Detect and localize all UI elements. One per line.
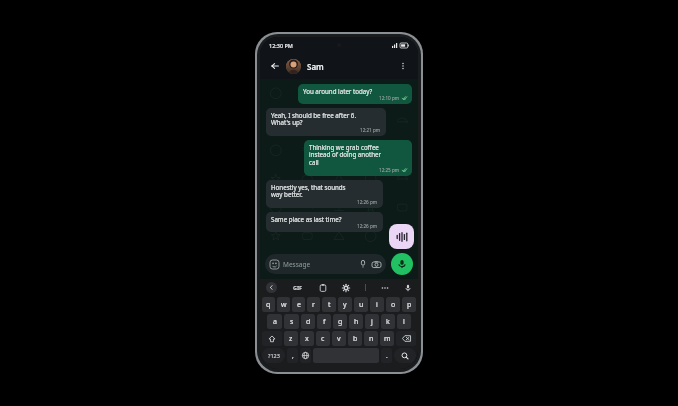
button[interactable]: Voice input [404, 284, 412, 292]
button[interactable]: More options [396, 59, 410, 73]
staticText: 12:26 pm [357, 199, 378, 205]
button[interactable]: h [349, 314, 363, 329]
button[interactable]: x [300, 331, 314, 346]
staticText: y [343, 300, 347, 310]
staticText: k [386, 317, 390, 327]
button[interactable]: Backspace [396, 331, 416, 346]
button[interactable] [286, 59, 301, 74]
button[interactable]: c [316, 331, 330, 346]
button[interactable]: a [267, 314, 282, 329]
button[interactable]: You around later today? [298, 84, 412, 104]
button[interactable]: i [370, 297, 384, 312]
staticText: n [369, 334, 374, 344]
button[interactable]: d [301, 314, 315, 329]
staticText: a [273, 317, 277, 327]
button[interactable]: Message [265, 254, 386, 274]
staticText: p [407, 300, 412, 310]
button[interactable]: Expand toolbar [266, 282, 277, 293]
button[interactable]: Settings [342, 284, 350, 292]
button[interactable]: , [287, 348, 298, 363]
button[interactable]: Yeah, I should be free after 6. What's u… [266, 108, 386, 136]
staticText: f [323, 317, 326, 327]
other: Attach [359, 260, 367, 268]
button[interactable]: e [292, 297, 305, 312]
staticText: 12:25 pm [379, 167, 400, 173]
staticText: d [306, 317, 311, 327]
button[interactable]: t [322, 297, 336, 312]
button[interactable]: Change language [300, 348, 311, 363]
button[interactable]: Clipboard [319, 284, 327, 292]
button[interactable]: s [284, 314, 299, 329]
button[interactable]: n [364, 331, 378, 346]
button[interactable]: u [354, 297, 368, 312]
staticText: 12:21 pm [360, 127, 381, 133]
button[interactable]: Shift [262, 331, 282, 346]
button[interactable]: r [307, 297, 320, 312]
button[interactable]: Honestly yes, that sounds way better. [266, 180, 383, 208]
button[interactable]: More [381, 284, 389, 292]
staticText: , [292, 351, 294, 360]
staticText: r [312, 300, 315, 310]
staticText: q [266, 300, 271, 310]
staticText: u [359, 300, 364, 310]
staticText: w [281, 300, 287, 310]
button[interactable]: ?123 [262, 348, 285, 363]
button[interactable]: GIF [293, 284, 303, 291]
button[interactable]: q [262, 297, 275, 312]
staticText: 12:26 pm [357, 223, 378, 229]
button[interactable]: Search [394, 348, 416, 363]
staticText: Thinking we grab coffee instead of doing… [309, 143, 381, 167]
button[interactable]: k [381, 314, 395, 329]
staticText: 12:10 pm [379, 95, 400, 101]
staticText: You around later today? [303, 87, 373, 95]
button[interactable]: l [397, 314, 411, 329]
staticText: Message [283, 260, 311, 269]
staticText: Honestly yes, that sounds way better. [271, 183, 346, 199]
staticText: v [337, 334, 341, 344]
staticText: m [384, 334, 391, 344]
button[interactable]: z [284, 331, 298, 346]
staticText: Sam [307, 61, 324, 72]
staticText: b [353, 334, 358, 344]
staticText: j [371, 317, 373, 327]
staticText: i [376, 300, 378, 310]
staticText: z [289, 334, 293, 344]
button[interactable]: j [365, 314, 379, 329]
staticText: 12:30 PM [269, 42, 293, 49]
button[interactable]: w [277, 297, 290, 312]
button[interactable]: Back [268, 59, 282, 73]
staticText: h [354, 317, 359, 327]
button[interactable]: v [332, 331, 346, 346]
staticText: c [321, 334, 325, 344]
button[interactable]: o [386, 297, 400, 312]
staticText: s [290, 317, 294, 327]
button[interactable]: Same place as last time? [266, 212, 383, 232]
staticText: t [328, 300, 331, 310]
button[interactable]: m [380, 331, 394, 346]
button[interactable]: . [381, 348, 392, 363]
button[interactable]: y [338, 297, 352, 312]
staticText: ?123 [268, 352, 280, 359]
staticText: g [338, 317, 343, 327]
button[interactable]: p [402, 297, 416, 312]
staticText: e [297, 300, 301, 310]
button[interactable]: Thinking we grab coffee instead of doing… [304, 140, 412, 176]
button[interactable]: g [333, 314, 347, 329]
button[interactable]: b [348, 331, 362, 346]
other: Camera [372, 260, 381, 269]
button[interactable]: f [317, 314, 331, 329]
staticText: x [305, 334, 309, 344]
staticText: Yeah, I should be free after 6. What's u… [271, 111, 357, 127]
staticText: o [391, 300, 396, 310]
staticText: Same place as last time? [271, 215, 342, 223]
staticText: l [403, 317, 405, 327]
staticText: . [386, 351, 388, 360]
button[interactable]: Record voice message [391, 253, 413, 275]
button[interactable]: Voice recording [389, 224, 414, 249]
